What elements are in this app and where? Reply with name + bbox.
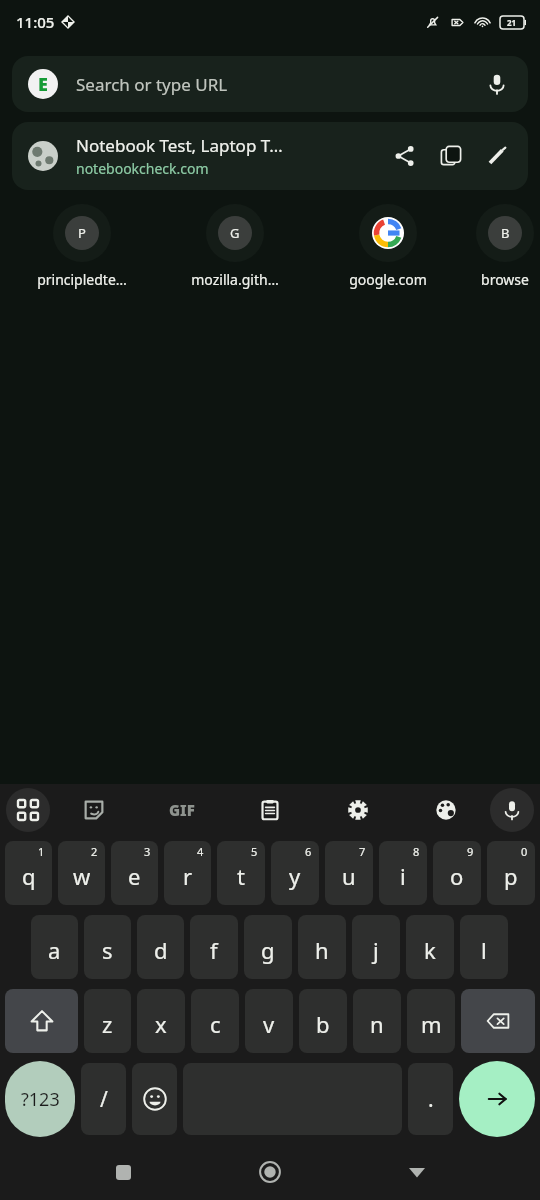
staticText: 6	[305, 844, 312, 859]
staticText: u	[342, 861, 356, 891]
staticText: 3	[144, 844, 151, 859]
staticText: 21	[507, 17, 517, 28]
staticText: E	[38, 72, 48, 97]
staticText: google.com	[349, 270, 427, 289]
button[interactable]: Back	[393, 1148, 441, 1196]
staticText: 5	[251, 844, 258, 859]
button[interactable]: Go	[459, 1061, 535, 1137]
staticText: 1	[38, 844, 45, 859]
button[interactable]: a	[31, 915, 78, 979]
button[interactable]: Clipboard	[226, 788, 314, 832]
button[interactable]: f	[190, 915, 238, 979]
button[interactable]: q	[5, 841, 52, 905]
staticText: 2	[91, 844, 98, 859]
button[interactable]: Tabs	[428, 133, 474, 179]
staticText: y	[289, 861, 301, 891]
button[interactable]: d	[137, 915, 184, 979]
button[interactable]: P	[5, 204, 158, 289]
button[interactable]: g	[244, 915, 292, 979]
button[interactable]: r	[164, 841, 211, 905]
staticText: t	[237, 861, 245, 891]
staticText: o	[450, 861, 464, 891]
button[interactable]: Voice search	[482, 69, 512, 99]
button[interactable]: Edit	[474, 133, 520, 179]
button[interactable]: Emoji	[132, 1063, 177, 1135]
button[interactable]: B	[464, 204, 540, 289]
staticText: r	[183, 861, 193, 891]
staticText: i	[400, 861, 406, 891]
button[interactable]: t	[217, 841, 265, 905]
button[interactable]: Share	[382, 133, 428, 179]
button[interactable]: w	[58, 841, 105, 905]
staticText: 7	[359, 844, 366, 859]
staticText: G	[230, 224, 240, 242]
button[interactable]: ?123	[5, 1061, 75, 1137]
button[interactable]: p	[487, 841, 535, 905]
staticText: e	[128, 861, 141, 891]
staticText: P	[78, 224, 86, 242]
staticText: B	[501, 224, 510, 242]
button[interactable]: Shift	[5, 989, 78, 1053]
button[interactable]: z	[84, 989, 131, 1053]
button[interactable]: v	[245, 989, 293, 1053]
staticText: l	[481, 935, 487, 965]
button[interactable]: b	[299, 989, 347, 1053]
button[interactable]: Voice input	[490, 788, 534, 832]
button[interactable]: y	[271, 841, 319, 905]
button[interactable]: Keyboard menu	[6, 788, 50, 832]
button[interactable]: c	[191, 989, 239, 1053]
button[interactable]: GIF	[138, 788, 226, 832]
button[interactable]: google.com	[311, 204, 464, 289]
staticText: k	[424, 935, 436, 965]
staticText: s	[102, 935, 113, 965]
staticText: 4	[197, 844, 204, 859]
staticText: 11:05	[16, 12, 55, 32]
button[interactable]: Notebook Test, Laptop T…	[12, 122, 528, 190]
button[interactable]: n	[353, 989, 401, 1053]
button[interactable]: E	[12, 56, 528, 112]
button[interactable]: k	[406, 915, 454, 979]
staticText: principledte…	[37, 270, 127, 289]
button[interactable]: s	[84, 915, 131, 979]
button[interactable]: h	[298, 915, 346, 979]
button[interactable]: .	[408, 1063, 453, 1135]
button[interactable]: Home	[246, 1148, 294, 1196]
staticText: mozilla.gith…	[191, 270, 279, 289]
staticText: p	[504, 861, 518, 891]
staticText: g	[261, 935, 275, 965]
button[interactable]: /	[81, 1063, 126, 1135]
button[interactable]: x	[137, 989, 185, 1053]
button[interactable]: Themes	[402, 788, 490, 832]
button[interactable]: G	[158, 204, 311, 289]
button[interactable]: j	[352, 915, 400, 979]
staticText: 8	[413, 844, 420, 859]
staticText: notebookcheck.com	[76, 159, 209, 178]
staticText: /	[100, 1085, 108, 1114]
button[interactable]: o	[433, 841, 481, 905]
staticText: .	[428, 1085, 434, 1114]
staticText: c	[210, 1009, 221, 1039]
button[interactable]: Settings	[314, 788, 402, 832]
button[interactable]: e	[111, 841, 158, 905]
button[interactable]: Stickers	[50, 788, 138, 832]
staticText: x	[155, 1009, 167, 1039]
button[interactable]: Backspace	[461, 989, 535, 1053]
staticText: a	[48, 935, 61, 965]
button[interactable]: m	[407, 989, 455, 1053]
button[interactable]: u	[325, 841, 373, 905]
staticText: z	[102, 1009, 113, 1039]
staticText: GIF	[169, 800, 195, 820]
staticText: h	[315, 935, 329, 965]
staticText: j	[373, 935, 379, 965]
staticText: n	[370, 1009, 384, 1039]
button[interactable]: Recents	[99, 1148, 147, 1196]
staticText: d	[154, 935, 168, 965]
button[interactable]: i	[379, 841, 427, 905]
staticText: f	[210, 935, 218, 965]
button[interactable]: l	[460, 915, 508, 979]
staticText: Search or type URL	[76, 73, 482, 96]
staticText: q	[22, 861, 36, 891]
staticText: w	[73, 861, 91, 891]
staticText: Notebook Test, Laptop T…	[76, 134, 283, 157]
